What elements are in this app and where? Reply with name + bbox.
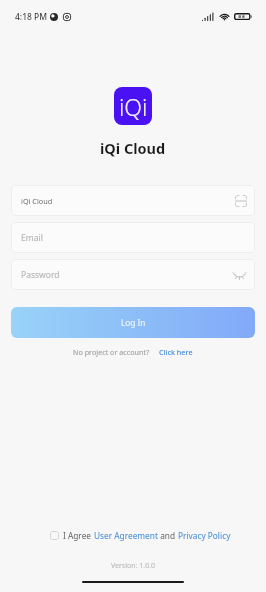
other: Scan QR code (235, 195, 247, 207)
staticText: iQi Cloud (21, 196, 235, 206)
staticText: Log In (121, 317, 146, 328)
staticText: Click here (159, 347, 193, 357)
staticText: Password (21, 269, 232, 281)
button[interactable]: User Agreement (94, 530, 158, 541)
staticText: No project or account? (73, 347, 150, 357)
staticText: I Agree (63, 530, 94, 541)
button[interactable]: Email (11, 222, 255, 253)
other: Show password (232, 267, 247, 282)
button[interactable]: iQi Cloud (11, 185, 255, 216)
staticText: iQi Cloud (100, 138, 166, 158)
button[interactable]: Log In (11, 307, 255, 338)
button[interactable]: Click here (159, 347, 193, 357)
staticText: Email (21, 232, 247, 244)
staticText: iQi (119, 91, 148, 122)
staticText: Version: 1.0.0 (0, 561, 266, 571)
button[interactable]: Privacy Policy (178, 530, 231, 541)
staticText: Privacy Policy (178, 530, 231, 541)
staticText: and (158, 530, 178, 541)
staticText: User Agreement (94, 530, 158, 541)
button[interactable]: Password (11, 259, 255, 290)
staticText: 4:18 PM (15, 11, 48, 23)
button[interactable]: Agree checkbox (50, 531, 59, 540)
